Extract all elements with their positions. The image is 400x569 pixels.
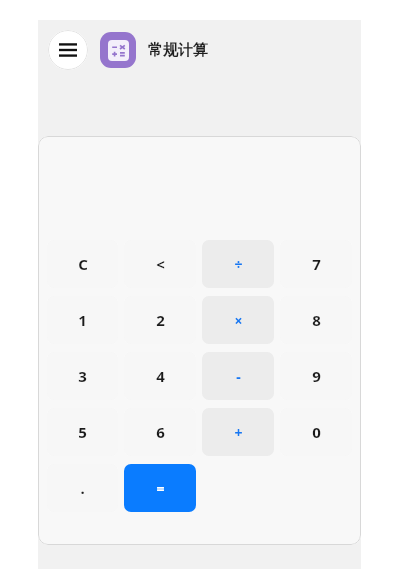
button[interactable]: 4	[124, 352, 196, 400]
staticText: +	[234, 423, 243, 442]
button[interactable]: 2	[124, 296, 196, 344]
button[interactable]: =	[124, 464, 196, 512]
button[interactable]: Menu	[48, 30, 88, 70]
staticText: 2	[156, 310, 165, 330]
staticText: ÷	[234, 255, 243, 274]
button[interactable]: C	[47, 240, 118, 288]
staticText: C	[78, 254, 88, 274]
staticText: 7	[312, 254, 321, 274]
staticText: 8	[312, 310, 321, 330]
staticText: 6	[156, 422, 165, 442]
button[interactable]: -	[202, 352, 274, 400]
button[interactable]: <	[124, 240, 196, 288]
staticText: 4	[156, 366, 165, 386]
staticText: 9	[312, 366, 321, 386]
staticText: 0	[312, 422, 321, 442]
staticText: .	[80, 478, 85, 498]
button[interactable]: .	[47, 464, 118, 512]
button[interactable]: 0	[280, 408, 352, 456]
button[interactable]: 6	[124, 408, 196, 456]
button[interactable]: 1	[47, 296, 118, 344]
button[interactable]: ×	[202, 296, 274, 344]
button[interactable]: ÷	[202, 240, 274, 288]
staticText: =	[156, 479, 165, 498]
staticText: 3	[78, 366, 87, 386]
staticText: 1	[78, 310, 87, 330]
button[interactable]: 8	[280, 296, 352, 344]
button[interactable]: 3	[47, 352, 118, 400]
button[interactable]: 9	[280, 352, 352, 400]
staticText: -	[236, 367, 241, 386]
button[interactable]: 5	[47, 408, 118, 456]
staticText: 5	[78, 422, 87, 442]
button[interactable]: +	[202, 408, 274, 456]
staticText: <	[156, 254, 165, 274]
staticText: 常规计算	[148, 41, 208, 60]
button[interactable]	[100, 32, 136, 68]
button[interactable]: 7	[280, 240, 352, 288]
staticText: ×	[234, 311, 243, 330]
